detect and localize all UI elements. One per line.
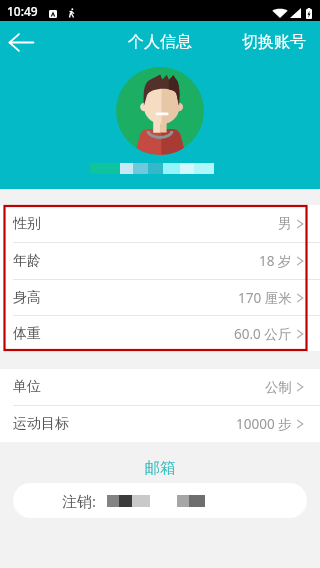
button[interactable]: Back: [4, 25, 38, 59]
staticText: 10:49: [7, 3, 38, 19]
button[interactable]: 单位: [0, 369, 320, 405]
staticText: 单位: [13, 378, 41, 396]
staticText: 60.0 公斤: [234, 325, 292, 343]
button[interactable]: 年龄: [0, 243, 320, 279]
staticText: 切换账号: [242, 32, 306, 52]
staticText: 170 厘米: [238, 289, 292, 307]
staticText: 个人信息: [128, 32, 192, 52]
button[interactable]: 切换账号: [234, 24, 320, 60]
staticText: 注销:: [62, 491, 97, 511]
staticText: 性别: [13, 215, 41, 233]
staticText: 男: [278, 215, 292, 232]
staticText: 18 岁: [259, 252, 292, 270]
staticText: 10000 步: [236, 415, 292, 433]
staticText: 体重: [13, 325, 41, 343]
staticText: 年龄: [13, 252, 41, 270]
button[interactable]: 身高: [0, 280, 320, 315]
button[interactable]: 邮箱: [0, 458, 320, 478]
staticText: 运动目标: [13, 415, 69, 433]
button[interactable]: 注销:: [13, 483, 307, 518]
button[interactable]: 性别: [0, 205, 320, 242]
staticText: 公制: [265, 379, 292, 396]
button[interactable]: 运动目标: [0, 406, 320, 442]
staticText: 身高: [13, 289, 41, 307]
button[interactable]: 体重: [0, 316, 320, 351]
